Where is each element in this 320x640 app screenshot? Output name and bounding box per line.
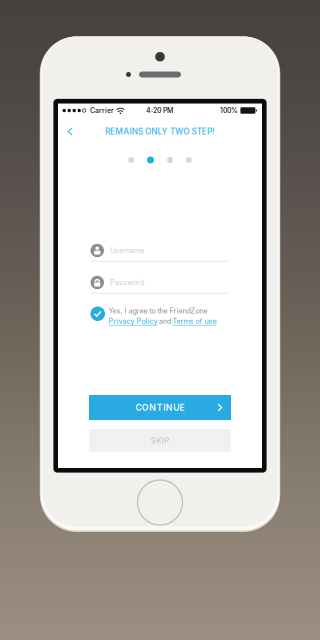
staticText: and [159,317,171,325]
staticText: Yes, I agree to the FriendZone [108,306,207,315]
button[interactable]: Terms of use [172,317,216,325]
staticText: 100% [220,106,238,115]
staticText: SKIP [151,436,169,445]
button[interactable]: Privacy Policy [108,317,157,325]
staticText: REMAINS ONLY TWO STEP! [105,126,215,136]
staticText: Privacy Policy [108,317,157,325]
button[interactable]: CONTINUE [89,395,231,420]
staticText: Username [110,246,144,255]
staticText: Carrier [90,106,114,115]
staticText: CONTINUE [135,402,185,413]
staticText: 4:20 PM [146,106,173,115]
staticText: Password [110,278,144,287]
button[interactable]: Back [58,121,82,141]
button[interactable]: SKIP [89,429,231,452]
staticText: Terms of use [172,317,216,325]
